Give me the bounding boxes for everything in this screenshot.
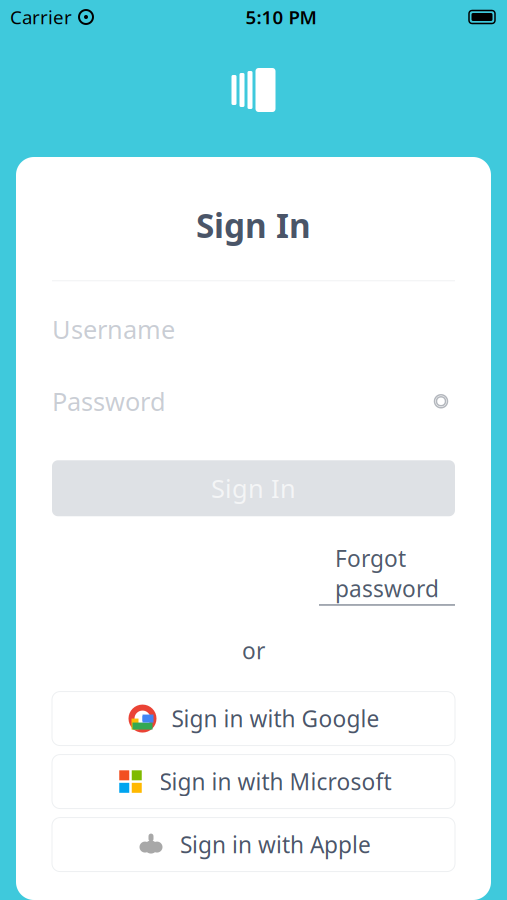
staticText: or — [242, 635, 265, 666]
staticText: Sign In — [211, 471, 296, 505]
staticText: Password — [52, 384, 166, 418]
staticText: Sign In — [196, 203, 311, 247]
staticText: Sign in with Apple — [180, 829, 371, 860]
staticText: Carrier — [10, 5, 72, 29]
button[interactable]: Sign In — [52, 460, 455, 516]
staticText: Sign in with Microsoft — [159, 766, 391, 797]
button[interactable]: Forgot password — [319, 543, 455, 605]
staticText: Forgot password — [335, 543, 439, 603]
button[interactable]: Sign in with Google — [52, 692, 455, 746]
button[interactable]: Username — [16, 307, 491, 351]
button[interactable]: Password — [16, 379, 491, 423]
staticText: 5:10 PM — [245, 5, 316, 29]
button[interactable]: Sign in with Microsoft — [52, 755, 455, 809]
button[interactable]: Sign in with Apple — [52, 818, 455, 872]
staticText: Username — [52, 312, 175, 346]
staticText: Sign in with Google — [171, 703, 379, 734]
